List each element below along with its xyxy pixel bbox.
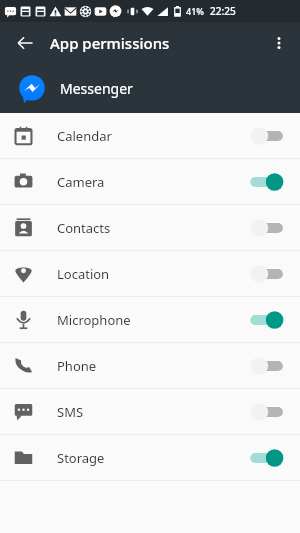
button[interactable]: Calendar <box>0 113 300 158</box>
staticText: Location <box>57 265 248 283</box>
button[interactable]: On <box>248 309 286 331</box>
button[interactable]: Off <box>248 217 286 239</box>
button[interactable]: More options <box>262 26 296 60</box>
staticText: Messenger <box>60 79 133 98</box>
button[interactable]: SMS <box>0 389 300 434</box>
button[interactable]: Messenger <box>0 64 300 113</box>
button[interactable]: Storage <box>0 435 300 480</box>
button[interactable]: Phone <box>0 343 300 388</box>
staticText: SMS <box>57 403 248 421</box>
staticText: Storage <box>57 449 248 467</box>
button[interactable]: On <box>248 171 286 193</box>
staticText: App permissions <box>50 33 170 53</box>
button[interactable]: Location <box>0 251 300 296</box>
button[interactable]: Contacts <box>0 205 300 250</box>
button[interactable]: Off <box>248 125 286 147</box>
button[interactable]: Off <box>248 263 286 285</box>
staticText: Microphone <box>57 311 248 329</box>
button[interactable]: On <box>248 447 286 469</box>
button[interactable]: Off <box>248 355 286 377</box>
staticText: Contacts <box>57 219 248 237</box>
button[interactable]: Microphone <box>0 297 300 342</box>
staticText: 22:25 <box>210 4 236 18</box>
staticText: Calendar <box>57 127 248 145</box>
staticText: Phone <box>57 357 248 375</box>
staticText: 41% <box>186 5 204 17</box>
button[interactable]: Back <box>8 26 42 60</box>
button[interactable]: Camera <box>0 159 300 204</box>
staticText: Camera <box>57 173 248 191</box>
button[interactable]: Off <box>248 401 286 423</box>
